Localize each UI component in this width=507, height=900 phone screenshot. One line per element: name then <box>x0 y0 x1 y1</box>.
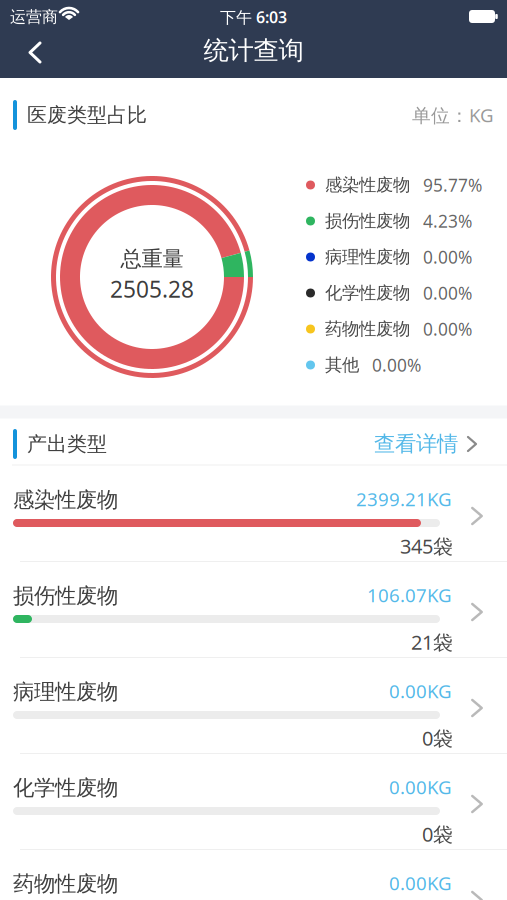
staticText: 单位：KG <box>412 103 494 127</box>
button[interactable]: 药物性废物 <box>0 850 507 900</box>
staticText: 0.00KG <box>389 871 452 895</box>
staticText: 下午 6:03 <box>220 6 287 28</box>
staticText: 0袋 <box>422 821 453 847</box>
staticText: 感染性废物 <box>325 174 410 196</box>
staticText: 查看详情 <box>374 431 458 457</box>
staticText: 21袋 <box>411 629 453 655</box>
staticText: 其他 <box>325 354 359 376</box>
staticText: 106.07KG <box>367 583 452 607</box>
staticText: 病理性废物 <box>325 246 410 268</box>
staticText: 345袋 <box>400 533 453 559</box>
staticText: 0.00% <box>372 353 421 376</box>
button[interactable]: 感染性废物 <box>0 466 507 562</box>
staticText: 产出类型 <box>27 432 107 456</box>
staticText: 0.00KG <box>389 679 452 703</box>
staticText: 统计查询 <box>203 35 303 66</box>
button[interactable]: 病理性废物 <box>0 658 507 754</box>
staticText: 运营商 <box>10 7 58 27</box>
staticText: 药物性废物 <box>13 871 118 897</box>
staticText: 0.00% <box>423 245 472 268</box>
button[interactable]: 损伤性废物 <box>0 562 507 658</box>
staticText: 0袋 <box>422 725 453 751</box>
staticText: 4.23% <box>423 209 472 232</box>
button[interactable]: 化学性废物 <box>0 754 507 850</box>
staticText: 化学性废物 <box>325 282 410 304</box>
staticText: 病理性废物 <box>13 679 118 705</box>
button[interactable]: 查看详情 <box>358 429 478 459</box>
staticText: 化学性废物 <box>13 775 118 801</box>
staticText: 医废类型占比 <box>27 103 147 127</box>
staticText: 药物性废物 <box>325 318 410 340</box>
staticText: 0.00KG <box>389 775 452 799</box>
staticText: 损伤性废物 <box>13 583 118 609</box>
staticText: 感染性废物 <box>13 487 118 513</box>
button[interactable]: Back <box>13 30 57 74</box>
staticText: 0.00% <box>423 317 472 340</box>
staticText: 2399.21KG <box>356 487 452 511</box>
staticText: 损伤性废物 <box>325 210 410 232</box>
staticText: 95.77% <box>423 173 482 196</box>
staticText: 2505.28 <box>110 274 194 304</box>
staticText: 总重量 <box>120 246 183 272</box>
staticText: 0.00% <box>423 281 472 304</box>
